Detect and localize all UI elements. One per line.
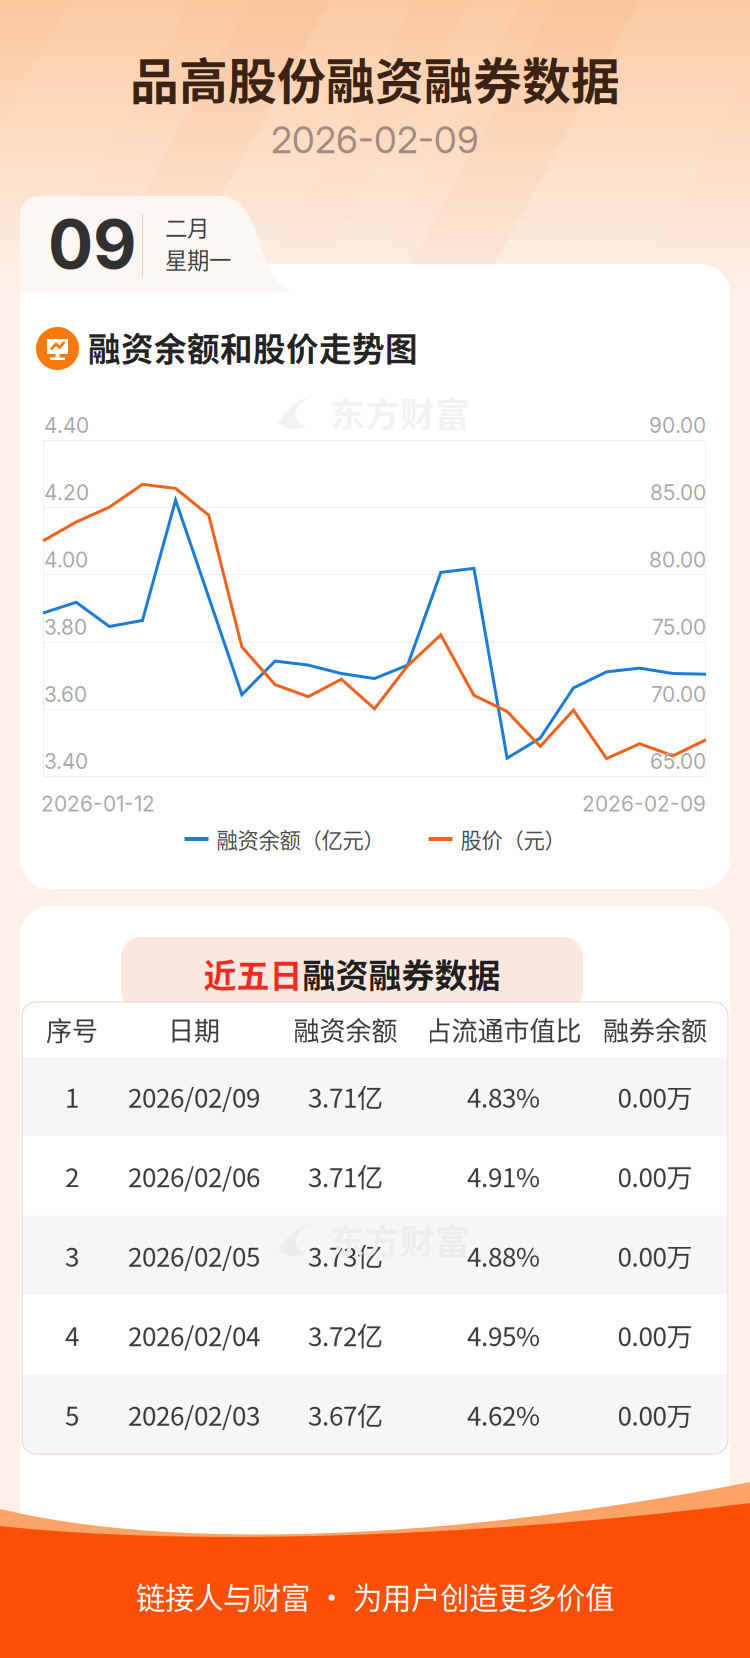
staticText: 4.62% [467,1396,540,1433]
staticText: 85.00 [650,480,706,505]
staticText: 二月 [165,211,209,243]
staticText: 80.00 [649,547,706,572]
staticText: 融资余额和股价走势图 [88,323,418,371]
staticText: 2026/02/05 [128,1237,260,1274]
staticText: 0.00万 [617,1157,692,1195]
staticText: 0.00万 [617,1078,692,1115]
staticText: 4.88% [467,1237,540,1274]
staticText: 0.00万 [617,1316,692,1354]
staticText: 融券余额 [603,1010,707,1048]
staticText: 75.00 [652,614,706,640]
staticText: 3 [65,1237,79,1274]
staticText: 1 [65,1078,79,1115]
staticText: 股价（元） [460,823,565,854]
staticText: 占流通市值比 [425,1010,581,1048]
staticText: 序号 [46,1010,98,1048]
staticText: 日期 [168,1010,220,1048]
staticText: 3.67亿 [308,1396,383,1433]
staticText: 65.00 [650,749,706,774]
staticText: 90.00 [649,413,706,438]
staticText: 3.40 [44,749,88,774]
staticText: 09 [48,203,137,285]
staticText: 4.91% [467,1157,540,1195]
staticText: 3.72亿 [308,1316,383,1354]
staticText: 3.71亿 [308,1157,383,1195]
staticText: 2026/02/03 [128,1396,260,1433]
staticText: 4.20 [44,480,89,505]
staticText: 融资融券数据 [302,950,500,997]
staticText: 链接人与财富 · 为用户创造更多价值 [136,1575,614,1617]
staticText: 3.80 [44,614,87,640]
staticText: 4.95% [467,1316,540,1354]
staticText: 0.00万 [617,1396,692,1433]
staticText: 2026/02/06 [128,1157,260,1195]
staticText: 东方财富 [330,1214,470,1264]
staticText: 4.00 [44,547,88,572]
staticText: 融资余额 [293,1010,397,1048]
staticText: 2026-02-09 [271,118,479,162]
staticText: 0.00万 [617,1237,692,1274]
staticText: 4.83% [467,1078,540,1115]
staticText: 融资余额（亿元） [216,823,384,854]
staticText: 3.60 [44,682,87,707]
staticText: 品高股份融资融券数据 [130,43,620,113]
staticText: 5 [65,1396,79,1433]
staticText: 3.73亿 [308,1237,383,1274]
staticText: 4 [65,1316,79,1354]
staticText: 3.71亿 [308,1078,383,1115]
staticText: 星期一 [165,243,231,275]
staticText: 2026/02/09 [128,1078,260,1115]
staticText: 70.00 [651,682,706,707]
staticText: 2 [65,1157,79,1195]
staticText: 东方财富 [330,387,470,437]
staticText: 2026/02/04 [128,1316,260,1354]
staticText: 近五日 [203,950,302,997]
staticText: 2026-02-09 [582,791,706,817]
staticText: 2026-01-12 [41,791,155,817]
staticText: 4.40 [44,413,89,438]
